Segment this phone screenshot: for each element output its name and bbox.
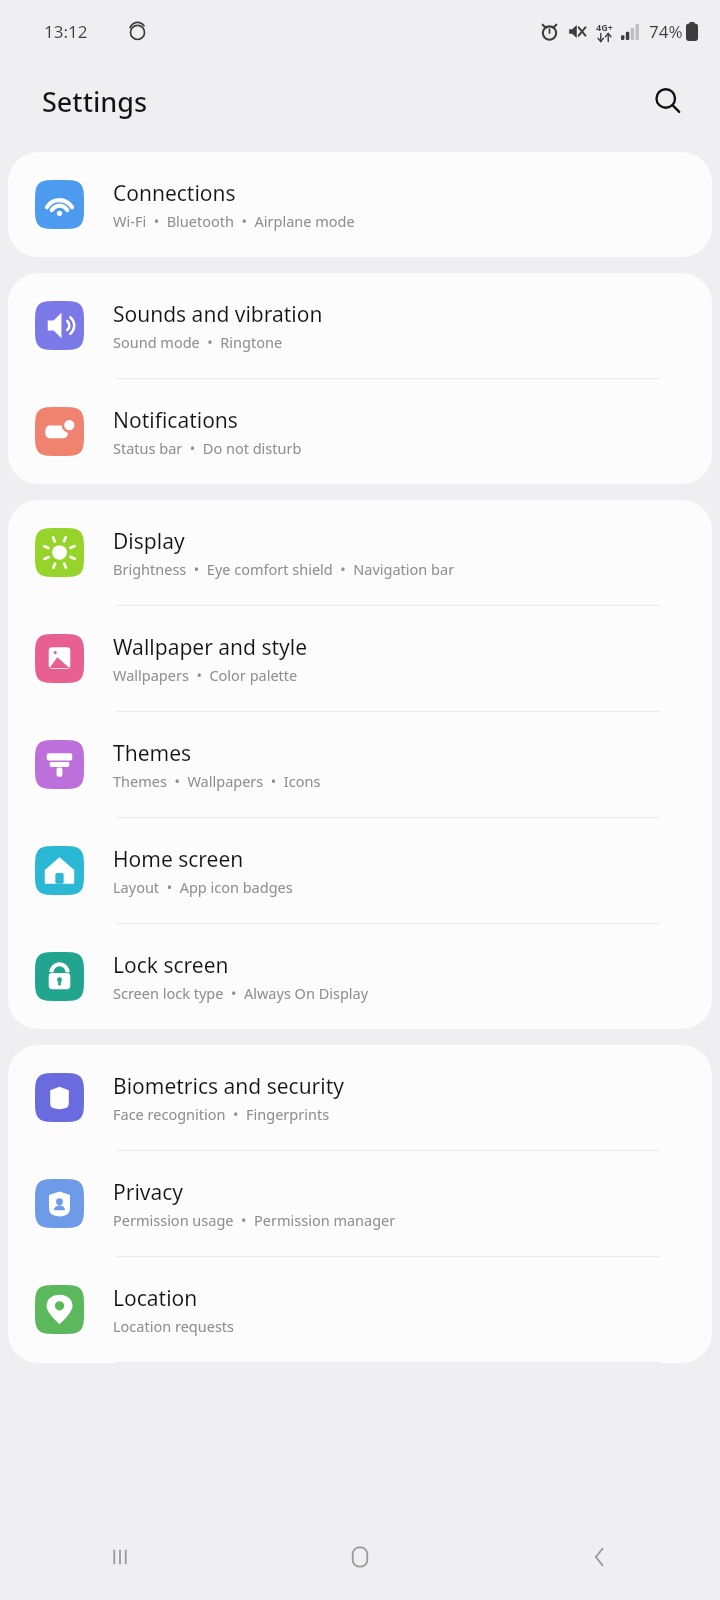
- button[interactable]: Notifications: [8, 379, 712, 484]
- button[interactable]: Search: [644, 77, 692, 125]
- button[interactable]: Wallpaper and style: [8, 606, 712, 711]
- button[interactable]: Location: [8, 1257, 712, 1362]
- staticText: Location: [113, 1284, 198, 1313]
- button[interactable]: Home: [240, 1514, 480, 1600]
- staticText: Layout • App icon badges: [113, 877, 293, 897]
- staticText: Screen lock type • Always On Display: [113, 983, 369, 1003]
- button[interactable]: Recent apps: [0, 1514, 240, 1600]
- staticText: 74%: [649, 20, 683, 43]
- staticText: Sound mode • Ringtone: [113, 332, 283, 352]
- button[interactable]: Display: [8, 500, 712, 605]
- staticText: Lock screen: [113, 951, 229, 980]
- staticText: 4G+: [596, 21, 613, 33]
- staticText: Privacy: [113, 1178, 184, 1207]
- staticText: Biometrics and security: [113, 1072, 344, 1101]
- staticText: Permission usage • Permission manager: [113, 1210, 396, 1230]
- staticText: Face recognition • Fingerprints: [113, 1104, 330, 1124]
- staticText: Sounds and vibration: [113, 300, 323, 329]
- button[interactable]: Home screen: [8, 818, 712, 923]
- button[interactable]: Themes: [8, 712, 712, 817]
- button[interactable]: Lock screen: [8, 924, 712, 1029]
- button[interactable]: Biometrics and security: [8, 1045, 712, 1150]
- staticText: Brightness • Eye comfort shield • Naviga…: [113, 559, 455, 579]
- staticText: Wi-Fi • Bluetooth • Airplane mode: [113, 211, 355, 231]
- staticText: Location requests: [113, 1316, 235, 1336]
- button[interactable]: Sounds and vibration: [8, 273, 712, 378]
- staticText: 13:12: [44, 20, 88, 43]
- staticText: Themes • Wallpapers • Icons: [113, 771, 321, 791]
- staticText: Notifications: [113, 406, 238, 435]
- staticText: Display: [113, 527, 185, 556]
- staticText: Wallpaper and style: [113, 633, 308, 662]
- button[interactable]: Privacy: [8, 1151, 712, 1256]
- staticText: Themes: [113, 739, 192, 768]
- staticText: Home screen: [113, 845, 244, 874]
- staticText: Connections: [113, 179, 236, 208]
- button[interactable]: Connections: [8, 152, 712, 257]
- staticText: Settings: [42, 83, 148, 120]
- staticText: Status bar • Do not disturb: [113, 438, 302, 458]
- button[interactable]: Back: [480, 1514, 720, 1600]
- staticText: Wallpapers • Color palette: [113, 665, 298, 685]
